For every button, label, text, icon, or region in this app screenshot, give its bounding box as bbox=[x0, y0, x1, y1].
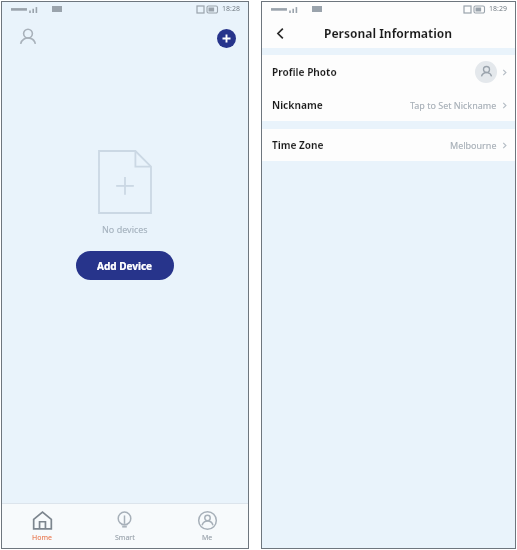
staticText: Melbourne bbox=[450, 139, 497, 151]
button[interactable]: Nickname bbox=[261, 89, 516, 121]
staticText: 18:29 bbox=[489, 4, 507, 14]
staticText: Smart bbox=[115, 533, 135, 543]
button[interactable]: Add Device bbox=[76, 251, 174, 280]
staticText: Me bbox=[202, 533, 213, 543]
staticText: Tap to Set Nickname bbox=[410, 99, 497, 111]
button[interactable]: Add bbox=[217, 29, 236, 48]
staticText: Add Device bbox=[97, 259, 153, 273]
button[interactable]: Profile Photo bbox=[261, 55, 516, 89]
staticText: Profile Photo bbox=[272, 65, 337, 79]
staticText: 18:28 bbox=[222, 4, 240, 14]
staticText: No devices bbox=[102, 223, 148, 235]
staticText: Personal Information bbox=[324, 25, 453, 41]
staticText: Home bbox=[32, 533, 52, 543]
button[interactable]: Back bbox=[267, 20, 293, 46]
staticText: Time Zone bbox=[272, 138, 324, 152]
button[interactable]: Profile bbox=[13, 23, 43, 53]
button[interactable]: Me bbox=[166, 504, 249, 549]
staticText: Nickname bbox=[272, 98, 323, 112]
button[interactable]: Time Zone bbox=[261, 129, 516, 161]
button[interactable]: Smart bbox=[83, 504, 166, 549]
button[interactable]: Home bbox=[1, 504, 83, 549]
